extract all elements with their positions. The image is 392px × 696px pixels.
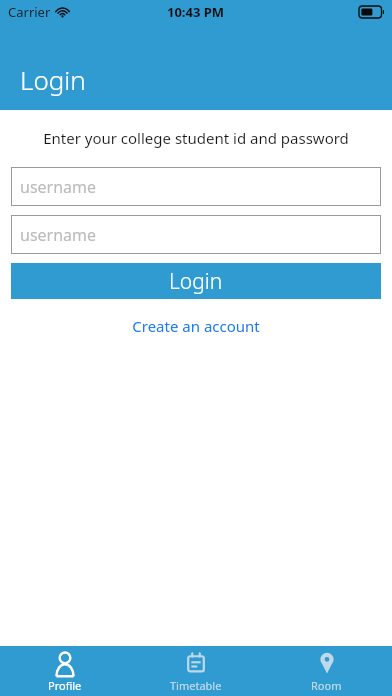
staticText: username	[20, 176, 97, 198]
staticText: Timetable	[170, 678, 222, 693]
staticText: username	[20, 224, 97, 246]
button[interactable]: Login	[11, 263, 381, 299]
button[interactable]: Create an account	[0, 312, 392, 340]
staticText: Create an account	[132, 316, 260, 336]
button[interactable]: username	[11, 167, 381, 206]
staticText: Carrier	[8, 3, 51, 21]
staticText: Enter your college student id and passwo…	[0, 128, 392, 148]
button[interactable]: Room	[261, 646, 392, 696]
staticText: 10:43 PM	[167, 3, 225, 21]
button[interactable]: username	[11, 215, 381, 254]
button[interactable]: Profile	[0, 646, 130, 696]
button[interactable]: Timetable	[130, 646, 261, 696]
staticText: Login	[169, 267, 223, 296]
staticText: Login	[20, 62, 86, 97]
staticText: Profile	[48, 678, 82, 693]
staticText: Room	[311, 678, 342, 693]
